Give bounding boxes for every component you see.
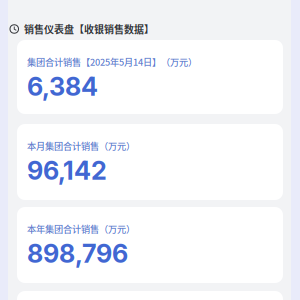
staticText: 96,142 bbox=[27, 155, 107, 186]
staticText: 本月集团合计销售（万元） bbox=[27, 139, 135, 152]
staticText: 898,796 bbox=[27, 238, 128, 269]
button[interactable]: 集团合计销售【2025年5月14日】（万元） bbox=[17, 40, 283, 114]
staticText: 集团合计销售【2025年5月14日】（万元） bbox=[27, 55, 197, 68]
staticText: 本年集团合计销售（万元） bbox=[27, 222, 135, 235]
button[interactable]: 本年集团合计销售（万元） bbox=[17, 207, 283, 283]
staticText: 销售仪表盘【收银销售数据】 bbox=[24, 22, 154, 36]
button[interactable]: 销售仪表盘【收银销售数据】 bbox=[0, 18, 275, 40]
button[interactable]: 本月集团合计销售（万元） bbox=[17, 124, 283, 200]
staticText: 6,384 bbox=[27, 71, 98, 102]
